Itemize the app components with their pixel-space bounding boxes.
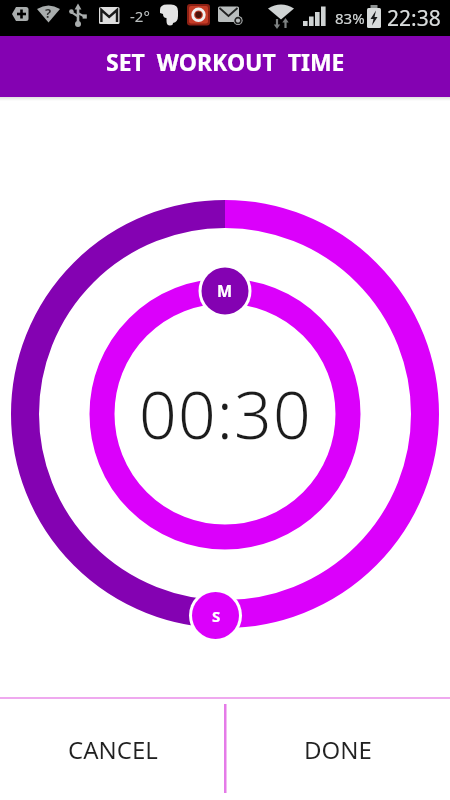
button[interactable]: CANCEL <box>0 699 225 800</box>
staticText: -2° <box>130 6 150 26</box>
staticText: S <box>212 606 221 626</box>
staticText: ? <box>45 4 52 22</box>
staticText: 83% <box>335 8 365 28</box>
button[interactable]: DONE <box>226 699 450 800</box>
staticText: DONE <box>304 733 372 766</box>
staticText: SET WORKOUT TIME <box>106 46 345 77</box>
staticText: M <box>217 280 233 302</box>
staticText: 22:38 <box>387 4 441 33</box>
staticText: CANCEL <box>68 733 158 766</box>
staticText: 00:30 <box>139 368 312 458</box>
